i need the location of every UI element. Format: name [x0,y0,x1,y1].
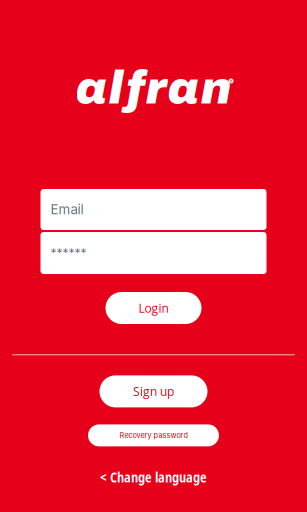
staticText: ****** [50,246,86,260]
staticText: Login [138,300,168,316]
button[interactable]: Recovery password [88,424,219,446]
button[interactable]: < Change language [100,467,207,487]
staticText: alfran [75,63,231,113]
button[interactable]: Login [105,292,201,324]
button[interactable]: Sign up [99,375,207,407]
staticText: Recovery password [119,431,187,440]
staticText: < Change language [100,468,207,486]
staticText: Email [50,201,83,217]
staticText: Sign up [133,383,174,399]
